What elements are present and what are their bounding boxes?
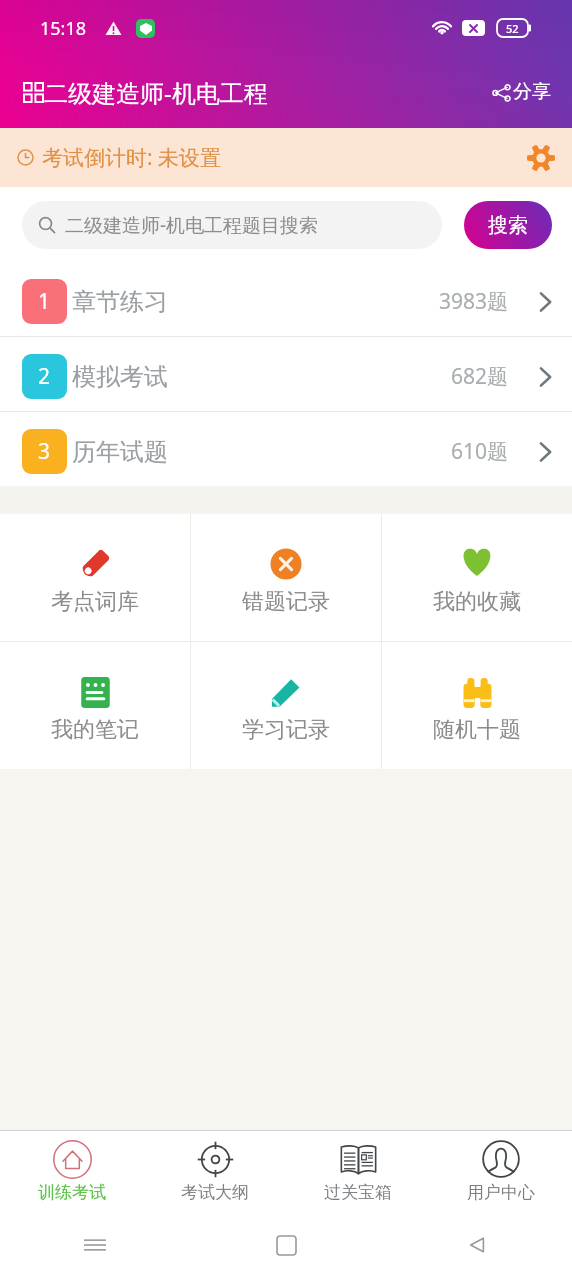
- staticText: 610题: [451, 437, 509, 466]
- staticText: 二级建造师-机电工程: [44, 76, 268, 109]
- staticText: 搜索: [488, 213, 528, 238]
- button[interactable]: 2: [0, 337, 572, 411]
- button[interactable]: 二级建造师-机电工程题目搜索: [22, 201, 442, 249]
- button[interactable]: Settings: [524, 141, 558, 175]
- button[interactable]: 用户中心: [429, 1131, 572, 1210]
- staticText: 考试倒计时: 未设置: [42, 143, 222, 172]
- staticText: 过关宝箱: [324, 1182, 392, 1203]
- staticText: 考试大纲: [181, 1182, 249, 1203]
- button[interactable]: 考点词库: [0, 514, 190, 641]
- staticText: 模拟考试: [72, 362, 168, 392]
- staticText: 1: [38, 287, 51, 316]
- staticText: 考点词库: [51, 588, 139, 616]
- staticText: 15:18: [40, 16, 87, 41]
- staticText: 3983题: [439, 287, 509, 316]
- staticText: 随机十题: [433, 716, 521, 744]
- staticText: 二级建造师-机电工程题目搜索: [65, 212, 319, 238]
- button[interactable]: Back: [457, 1225, 497, 1265]
- button[interactable]: 我的笔记: [0, 642, 190, 769]
- staticText: 训练考试: [38, 1182, 106, 1203]
- button[interactable]: 考试大纲: [143, 1131, 286, 1210]
- staticText: 用户中心: [467, 1182, 535, 1203]
- button[interactable]: Home: [266, 1225, 306, 1265]
- button[interactable]: 学习记录: [191, 642, 381, 769]
- staticText: 学习记录: [242, 716, 330, 744]
- button[interactable]: 3: [0, 412, 572, 486]
- button[interactable]: 搜索: [464, 201, 552, 249]
- staticText: 章节练习: [72, 287, 168, 317]
- staticText: 682题: [451, 362, 509, 391]
- staticText: 历年试题: [72, 437, 168, 467]
- staticText: 我的收藏: [433, 588, 521, 616]
- staticText: 2: [38, 362, 51, 391]
- button[interactable]: Recent apps: [75, 1225, 115, 1265]
- staticText: 3: [38, 437, 51, 466]
- staticText: 错题记录: [242, 588, 330, 616]
- button[interactable]: 过关宝箱: [286, 1131, 429, 1210]
- button[interactable]: 1: [0, 262, 572, 336]
- staticText: 52: [506, 21, 519, 36]
- button[interactable]: 分享: [489, 74, 554, 110]
- button[interactable]: 我的收藏: [382, 514, 572, 641]
- button[interactable]: 训练考试: [0, 1131, 143, 1210]
- staticText: 分享: [513, 80, 551, 104]
- button[interactable]: 错题记录: [191, 514, 381, 641]
- button[interactable]: 随机十题: [382, 642, 572, 769]
- staticText: 我的笔记: [51, 716, 139, 744]
